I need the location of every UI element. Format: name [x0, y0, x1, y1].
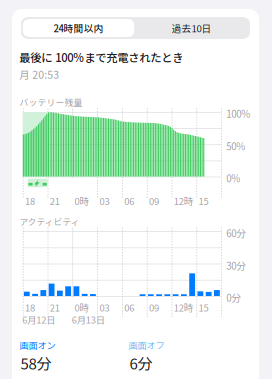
staticText: 最後に 100%まで充電されたとき — [19, 49, 183, 65]
button[interactable]: 過去10日 — [135, 19, 248, 37]
staticText: 0% — [226, 171, 240, 185]
staticText: 21 — [50, 194, 60, 208]
staticText: 03 — [99, 194, 109, 208]
staticText: 21 — [50, 300, 60, 314]
staticText: 0時 — [75, 194, 89, 208]
staticText: バッテリー残量 — [19, 95, 82, 108]
staticText: 12時 — [174, 194, 193, 208]
staticText: 09 — [149, 194, 159, 208]
staticText: 6月13日 — [72, 313, 105, 326]
staticText: 月 20:53 — [19, 66, 59, 82]
staticText: 過去10日 — [171, 21, 211, 35]
staticText: 6月12日 — [22, 313, 55, 326]
staticText: 03 — [99, 300, 109, 314]
staticText: 18 — [25, 300, 35, 314]
staticText: 12時 — [174, 300, 193, 314]
staticText: 15 — [199, 194, 209, 208]
staticText: 100% — [226, 106, 250, 121]
staticText: 06 — [124, 194, 134, 208]
staticText: 0分 — [226, 290, 241, 305]
staticText: 18 — [25, 194, 35, 208]
staticText: 画面オフ — [129, 338, 165, 352]
staticText: 24時間以内 — [53, 21, 103, 35]
staticText: 58分 — [20, 352, 51, 374]
staticText: 15 — [199, 300, 209, 314]
staticText: アクティビティ — [19, 215, 79, 228]
staticText: 60分 — [226, 226, 246, 240]
staticText: 06 — [124, 300, 134, 314]
staticText: 09 — [149, 300, 159, 314]
button[interactable]: 24時間以内 — [23, 19, 134, 37]
staticText: 50% — [226, 139, 245, 153]
staticText: 0時 — [75, 300, 89, 314]
staticText: 30分 — [226, 258, 246, 273]
staticText: 6分 — [129, 352, 152, 374]
staticText: 画面オン — [20, 338, 56, 352]
